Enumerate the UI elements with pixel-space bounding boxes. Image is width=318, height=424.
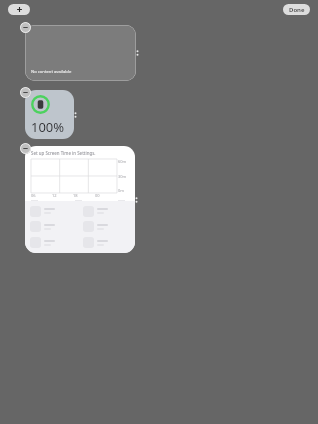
staticText: 60m [118,159,127,164]
button[interactable]: Remove widget [20,22,31,33]
staticText: 00 [95,193,100,198]
staticText: 100% [31,118,65,136]
button[interactable]: Resize widget [73,110,78,120]
staticText: Done [289,6,305,14]
button[interactable]: Remove widget [20,87,31,98]
staticText: 30m [118,174,127,179]
button[interactable]: No content available [25,25,136,81]
staticText: Set up Screen Time in Settings. [31,150,96,156]
staticText: 12 [52,193,57,198]
button[interactable]: Add widget [8,4,30,15]
staticText: No content available [31,69,72,75]
button[interactable]: Done [283,4,310,15]
staticText: 0m [118,188,125,193]
button[interactable]: Remove widget [20,143,31,154]
button[interactable]: Resize widget [134,195,139,205]
staticText: 18 [73,193,78,198]
button[interactable]: Set up Screen Time in Settings. [25,146,135,253]
button[interactable]: Resize widget [135,48,140,58]
button[interactable]: 100% [25,90,74,139]
staticText: 06 [31,193,36,198]
